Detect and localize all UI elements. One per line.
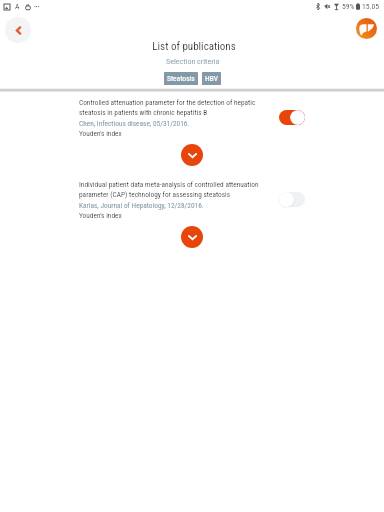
staticText: 15.05 [362,2,379,11]
button[interactable]: Expand details [181,226,203,248]
staticText: Steatosis [167,74,195,83]
staticText: steatosis in patients with chronic hepat… [79,108,208,117]
staticText: List of publications [152,40,236,53]
button[interactable]: App logo [356,18,377,39]
staticText: Chen, Infectious disease, 05/31/2016. [79,119,190,128]
staticText: Individual patient data meta-analysis of… [79,180,259,189]
button[interactable]: Toggle selection [279,110,305,125]
staticText: Youden's index [79,211,122,220]
staticText: ••• [34,4,40,10]
button[interactable]: Controlled attenuation parameter for the… [0,94,384,174]
button[interactable]: HBV [202,72,221,85]
button[interactable]: Back [5,17,31,43]
button[interactable]: Toggle selection [279,192,305,207]
staticText: 59% [342,2,355,11]
staticText: HBV [205,74,218,83]
staticText: A [15,2,20,11]
staticText: Selection criteria [166,57,220,66]
staticText: parameter (CAP) technology for assessing… [79,190,231,199]
button[interactable]: Steatosis [164,72,198,85]
button[interactable]: Individual patient data meta-analysis of… [0,176,384,256]
staticText: Controlled attenuation parameter for the… [79,98,256,107]
button[interactable]: Expand details [181,144,203,166]
staticText: Karlas, Journal of Hepatology, 12/28/201… [79,201,204,210]
staticText: Youden's index [79,129,122,138]
